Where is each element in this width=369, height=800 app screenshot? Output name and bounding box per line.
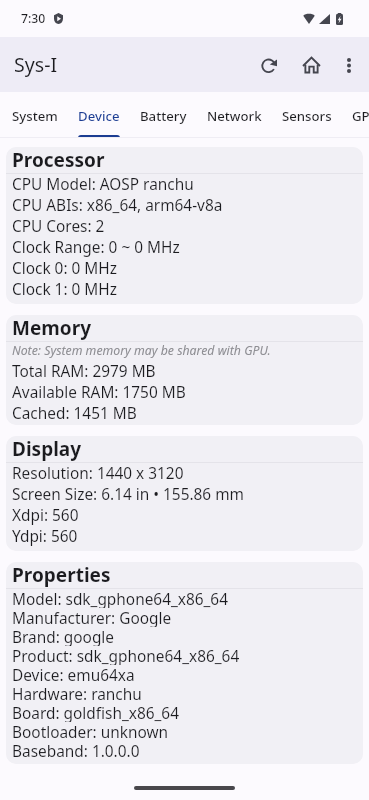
staticText: Clock 0: 0 MHz: [12, 258, 117, 279]
staticText: Clock Range: 0 ~ 0 MHz: [12, 237, 180, 258]
staticText: Device: emu64xa: [12, 665, 135, 684]
button[interactable]: Battery: [130, 92, 197, 138]
staticText: Battery: [140, 107, 187, 125]
button[interactable]: Processor: [6, 147, 363, 304]
staticText: Hardware: ranchu: [12, 684, 142, 703]
staticText: Processor: [12, 147, 105, 173]
staticText: Baseband: 1.0.0.0: [12, 741, 140, 760]
staticText: Sys-I: [14, 51, 58, 78]
staticText: CPU ABIs: x86_64, arm64-v8a: [12, 195, 223, 216]
button[interactable]: Refresh: [248, 41, 290, 89]
button[interactable]: GPU: [342, 92, 369, 138]
button[interactable]: Home: [290, 41, 332, 89]
staticText: GPU: [352, 107, 369, 125]
staticText: Properties: [12, 562, 111, 588]
staticText: Device: [78, 107, 120, 125]
staticText: 7:30: [21, 10, 46, 27]
staticText: CPU Model: AOSP ranchu: [12, 174, 194, 195]
staticText: Board: goldfish_x86_64: [12, 703, 179, 722]
staticText: Screen Size: 6.14 in • 155.86 mm: [12, 484, 244, 505]
staticText: Bootloader: unknown: [12, 722, 169, 741]
button[interactable]: Device: [68, 92, 130, 138]
button[interactable]: Memory: [6, 315, 363, 425]
button[interactable]: Display: [6, 436, 363, 551]
staticText: Network: [207, 107, 262, 125]
staticText: Brand: google: [12, 627, 114, 646]
staticText: Ydpi: 560: [12, 526, 78, 547]
staticText: Memory: [12, 315, 92, 341]
staticText: Cached: 1451 MB: [12, 403, 137, 424]
staticText: Resolution: 1440 x 3120: [12, 463, 184, 484]
staticText: Clock 1: 0 MHz: [12, 279, 117, 300]
staticText: Display: [12, 436, 82, 462]
staticText: Note: System memory may be shared with G…: [12, 342, 271, 359]
staticText: Model: sdk_gphone64_x86_64: [12, 589, 228, 608]
staticText: Sensors: [282, 107, 332, 125]
staticText: CPU Cores: 2: [12, 216, 105, 237]
staticText: System: [12, 107, 58, 125]
button[interactable]: Network: [197, 92, 272, 138]
staticText: Total RAM: 2979 MB: [12, 361, 156, 382]
button[interactable]: More options: [332, 41, 366, 89]
button[interactable]: Sensors: [272, 92, 342, 138]
staticText: Manufacturer: Google: [12, 608, 172, 627]
staticText: Xdpi: 560: [12, 505, 79, 526]
button[interactable]: Properties: [6, 562, 363, 764]
button[interactable]: System: [2, 92, 68, 138]
staticText: Available RAM: 1750 MB: [12, 382, 186, 403]
staticText: Product: sdk_gphone64_x86_64: [12, 646, 240, 665]
